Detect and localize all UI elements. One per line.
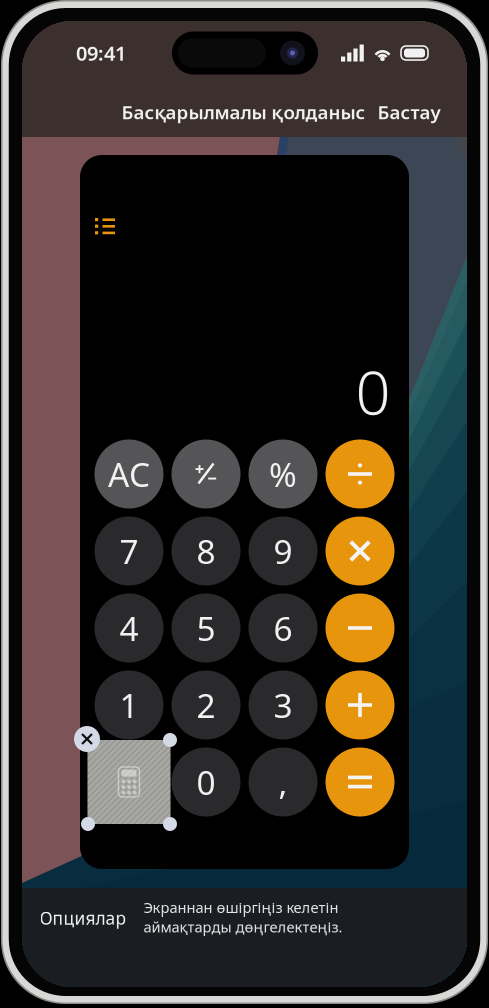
staticText: 4 [119,606,138,650]
button[interactable]: History [85,208,125,244]
button[interactable] [325,516,394,585]
button[interactable]: 0 [171,747,240,816]
button[interactable] [171,439,240,508]
button[interactable]: 8 [171,516,240,585]
staticText: Экраннан өшіргіңіз келетін аймақтарды дө… [143,897,342,936]
staticText: Опциялар [39,906,126,929]
button[interactable]: AC [94,439,163,508]
button[interactable]: 7 [94,516,163,585]
button[interactable] [325,439,394,508]
staticText: 6 [273,606,292,650]
staticText: Басқарылмалы қолданыс [121,100,365,124]
staticText: % [269,452,297,496]
button[interactable]: 1 [94,670,163,739]
staticText: 7 [119,529,138,573]
button[interactable] [325,593,394,662]
staticText: 09:41 [76,40,126,66]
staticText: 0 [355,350,390,432]
button[interactable]: 5 [171,593,240,662]
staticText: 5 [196,606,215,650]
button[interactable]: Опциялар [29,898,136,937]
staticText: 0 [196,760,215,804]
staticText: 8 [196,529,215,573]
button[interactable]: Remove area [74,726,100,752]
staticText: Бастау [377,100,440,124]
button[interactable]: Бастау [377,100,440,124]
staticText: 1 [119,683,138,727]
button[interactable]: 6 [248,593,317,662]
button[interactable] [325,670,394,739]
staticText: 3 [273,683,292,727]
staticText: 9 [273,529,292,573]
button[interactable]: 3 [248,670,317,739]
button[interactable]: 9 [248,516,317,585]
button[interactable]: 4 [94,593,163,662]
staticText: 2 [196,683,215,727]
button[interactable] [325,747,394,816]
button[interactable]: 2 [171,670,240,739]
staticText: AC [108,452,150,496]
staticText: , [278,760,287,804]
button[interactable]: % [248,439,317,508]
button[interactable] [94,747,163,816]
button[interactable]: , [248,747,317,816]
